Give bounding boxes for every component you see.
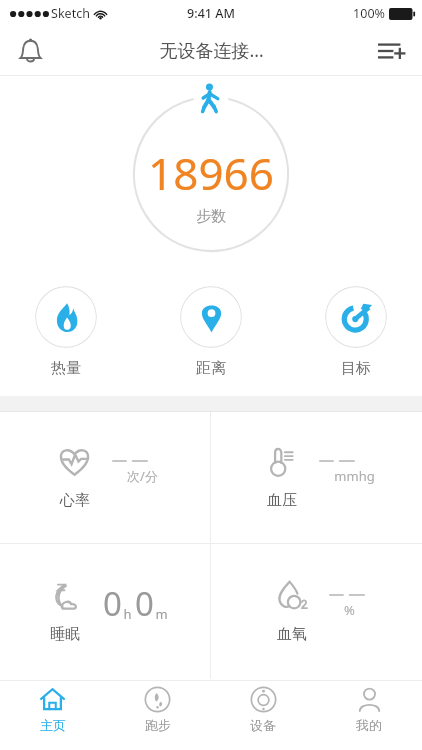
staticText: 我的: [356, 717, 382, 733]
staticText: 9:41 AM: [187, 5, 235, 22]
button[interactable]: Notifications: [8, 29, 52, 73]
button[interactable]: 18966: [121, 84, 301, 264]
staticText: 心率: [60, 491, 90, 510]
button[interactable]: 设备: [210, 681, 316, 737]
staticText: 无设备连接…: [159, 38, 264, 63]
staticText: 100%: [353, 5, 385, 22]
staticText: 距离: [196, 359, 226, 378]
button[interactable]: 血压: [211, 412, 422, 543]
button[interactable]: 主页: [0, 681, 105, 737]
staticText: 设备: [250, 717, 276, 733]
button[interactable]: 我的: [316, 681, 422, 737]
staticText: 睡眠: [50, 625, 80, 644]
button[interactable]: Add device: [370, 29, 414, 73]
staticText: 18966: [148, 143, 274, 203]
staticText: 0: [135, 581, 154, 626]
button[interactable]: 热量: [22, 286, 110, 378]
staticText: 步数: [196, 207, 226, 226]
staticText: 血压: [267, 491, 297, 510]
button[interactable]: 睡眠: [0, 544, 210, 679]
staticText: 跑步: [145, 717, 171, 733]
button[interactable]: 目标: [312, 286, 400, 378]
staticText: %: [344, 601, 355, 619]
staticText: 0: [103, 581, 122, 626]
staticText: 主页: [40, 717, 66, 733]
staticText: 热量: [51, 359, 81, 378]
button[interactable]: 距离: [167, 286, 255, 378]
staticText: h: [123, 605, 132, 623]
staticText: mmhg: [334, 467, 375, 485]
staticText: 目标: [341, 359, 371, 378]
button[interactable]: 跑步: [105, 681, 210, 737]
staticText: Sketch: [51, 5, 90, 22]
staticText: m: [155, 605, 168, 623]
staticText: 次/分: [127, 467, 158, 485]
button[interactable]: 心率: [0, 412, 210, 543]
button[interactable]: 血氧: [211, 544, 422, 679]
staticText: 血氧: [277, 625, 307, 644]
